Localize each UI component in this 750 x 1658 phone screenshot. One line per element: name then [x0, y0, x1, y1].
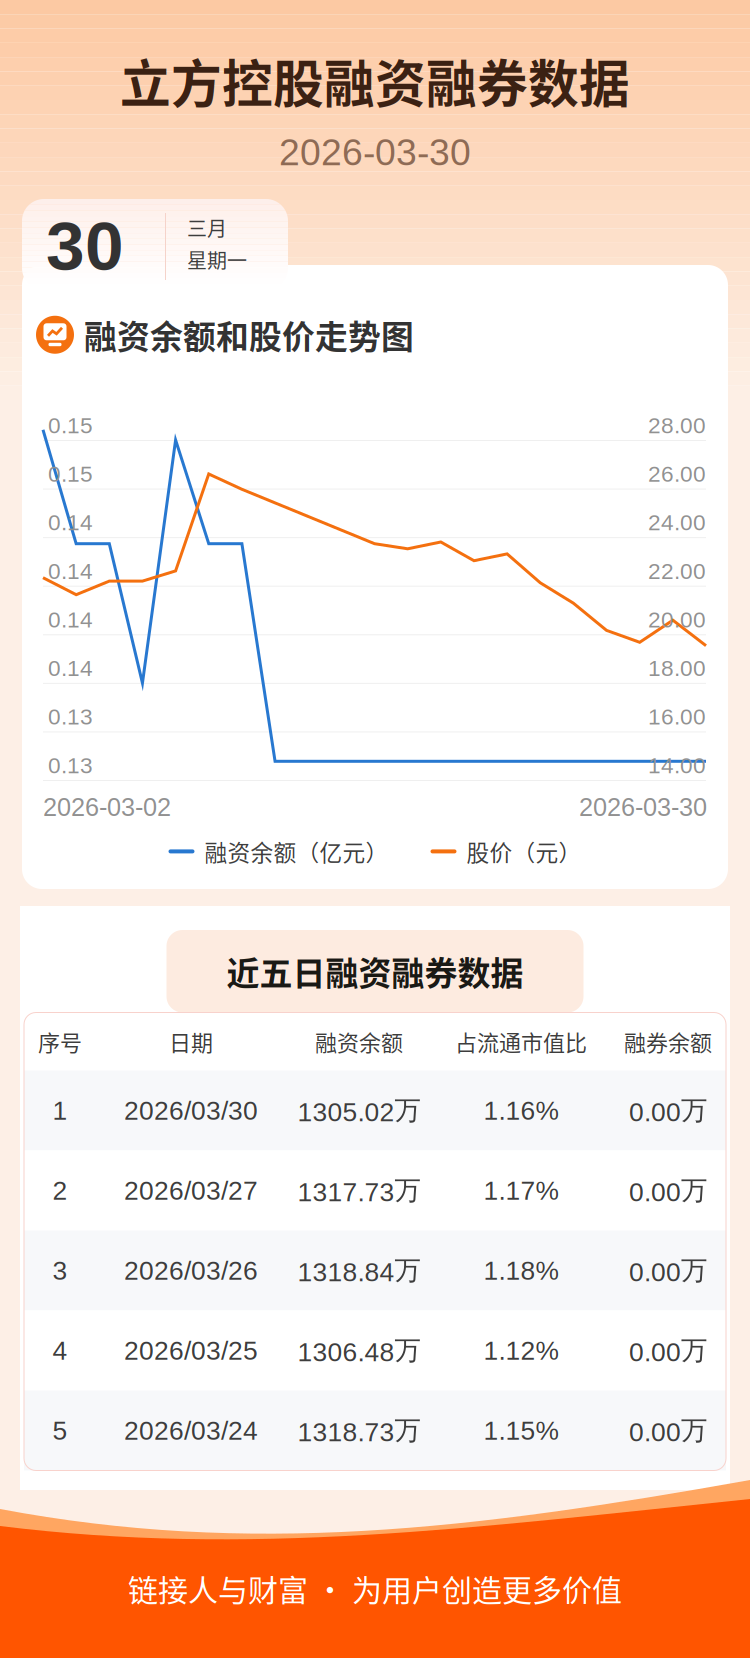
staticText: 4	[52, 1336, 67, 1365]
staticText: 1318.73万	[297, 1414, 420, 1447]
staticText: 22.00	[648, 558, 706, 584]
staticText: 链接人与财富 · 为用户创造更多价值	[128, 1567, 622, 1610]
staticText: 融资余额（亿元）	[204, 835, 388, 868]
staticText: 融券余额	[624, 1026, 712, 1057]
staticText: 2026/03/24	[124, 1416, 258, 1445]
staticText: 0.00万	[629, 1334, 707, 1367]
staticText: 1.12%	[483, 1336, 558, 1365]
staticText: 融资余额和股价走势图	[84, 311, 414, 358]
staticText: 0.14	[48, 558, 93, 584]
staticText: 占流通市值比	[455, 1026, 587, 1057]
staticText: 0.00万	[629, 1254, 707, 1287]
staticText: 0.15	[48, 413, 93, 438]
staticText: 18.00	[648, 655, 706, 681]
staticText: 20.00	[648, 607, 706, 632]
staticText: 2026/03/30	[124, 1096, 258, 1125]
staticText: 0.14	[48, 510, 93, 535]
staticText: 2026/03/26	[124, 1256, 258, 1285]
staticText: 0.15	[48, 461, 93, 486]
staticText: 2026-03-30	[279, 131, 471, 173]
staticText: 序号	[38, 1026, 82, 1057]
staticText: 2026-03-30	[579, 793, 707, 821]
staticText: 2026/03/27	[124, 1176, 258, 1205]
staticText: 14.00	[648, 753, 706, 778]
staticText: 0.14	[48, 607, 93, 632]
staticText: 1317.73万	[297, 1174, 420, 1207]
staticText: 1.16%	[483, 1096, 558, 1125]
staticText: 5	[52, 1416, 67, 1445]
staticText: 融资余额	[315, 1026, 403, 1057]
staticText: 3	[52, 1256, 67, 1285]
staticText: 近五日融资融券数据	[226, 948, 523, 994]
staticText: 1305.02万	[297, 1094, 420, 1127]
staticText: 1.18%	[483, 1256, 558, 1285]
staticText: 16.00	[648, 704, 706, 729]
staticText: 2026/03/25	[124, 1336, 258, 1365]
staticText: 28.00	[648, 413, 706, 438]
staticText: 三月	[187, 213, 227, 242]
staticText: 立方控股融资融券数据	[120, 44, 630, 117]
staticText: 星期一	[187, 245, 247, 274]
staticText: 1.17%	[483, 1176, 558, 1205]
staticText: 股价（元）	[466, 835, 581, 868]
staticText: 0.00万	[629, 1174, 707, 1207]
staticText: 30	[46, 207, 124, 284]
staticText: 0.00万	[629, 1414, 707, 1447]
staticText: 1.15%	[483, 1416, 558, 1445]
staticText: 0.14	[48, 655, 93, 681]
staticText: 2	[52, 1176, 67, 1205]
staticText: 1306.48万	[297, 1334, 420, 1367]
staticText: 日期	[169, 1026, 213, 1057]
staticText: 26.00	[648, 461, 706, 486]
staticText: 0.13	[48, 753, 93, 778]
staticText: 2026-03-02	[43, 793, 171, 821]
staticText: 1	[52, 1096, 67, 1125]
staticText: 0.13	[48, 704, 93, 729]
staticText: 0.00万	[629, 1094, 707, 1127]
staticText: 24.00	[648, 510, 706, 535]
staticText: 1318.84万	[297, 1254, 420, 1287]
